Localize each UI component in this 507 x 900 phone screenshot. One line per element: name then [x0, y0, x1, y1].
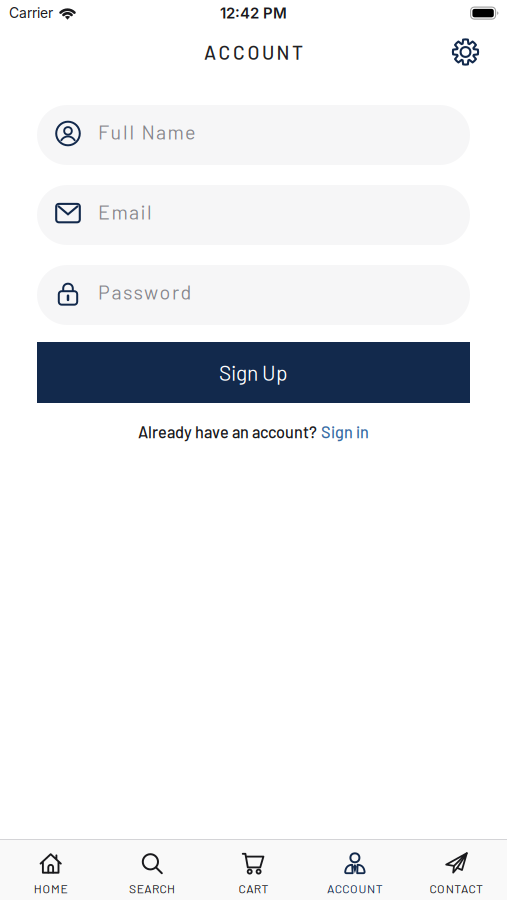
staticText: CONTACT — [429, 881, 483, 896]
button[interactable]: Sign in — [321, 422, 369, 441]
staticText: 12:42 PM — [220, 4, 287, 22]
button[interactable]: CONTACT — [406, 852, 507, 896]
button[interactable]: SEARCH — [101, 852, 203, 896]
staticText: SEARCH — [129, 881, 175, 896]
staticText: Sign in — [321, 422, 369, 441]
button[interactable]: Sign Up — [37, 342, 470, 403]
staticText: N — [276, 40, 289, 63]
staticText: A — [204, 40, 216, 63]
staticText: O — [247, 40, 259, 63]
staticText: ACCOUNT — [327, 881, 383, 896]
staticText: CART — [239, 881, 268, 896]
staticText: Already have an account? — [138, 422, 317, 441]
button[interactable]: CART — [203, 852, 304, 896]
button[interactable]: HOME — [0, 852, 101, 896]
button[interactable]: Email — [37, 185, 470, 245]
button[interactable] — [452, 38, 479, 65]
staticText: U — [262, 40, 274, 63]
staticText: Email — [98, 200, 152, 223]
staticText: Password — [98, 280, 191, 303]
staticText: C — [233, 40, 245, 63]
staticText: C — [218, 40, 230, 63]
staticText: Carrier — [9, 5, 53, 21]
button[interactable]: ACCOUNT — [304, 852, 406, 896]
staticText: Sign Up — [219, 360, 288, 385]
staticText: T — [292, 40, 303, 63]
staticText: HOME — [34, 881, 68, 896]
staticText: Full Name — [98, 120, 196, 143]
button[interactable]: Password — [37, 265, 470, 325]
button[interactable]: Full Name — [37, 105, 470, 165]
